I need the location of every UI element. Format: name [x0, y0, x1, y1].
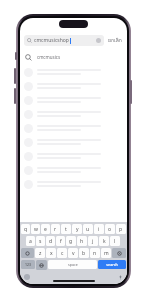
- button[interactable]: [20, 79, 127, 93]
- button[interactable]: f: [56, 236, 65, 246]
- button[interactable]: p: [116, 224, 126, 234]
- staticText: m: [104, 250, 109, 257]
- staticText: ยกเลิก: [108, 36, 122, 44]
- button[interactable]: Emoji: [36, 260, 47, 270]
- staticText: w: [34, 226, 38, 233]
- staticText: n: [93, 250, 97, 257]
- button[interactable]: y: [72, 224, 82, 234]
- button[interactable]: cmcmusicshop: [24, 35, 104, 46]
- button[interactable]: h: [77, 236, 87, 246]
- button[interactable]: w: [31, 224, 40, 234]
- button[interactable]: r: [51, 224, 60, 234]
- button[interactable]: t: [61, 224, 71, 234]
- other: Silent switch: [15, 52, 17, 60]
- button[interactable]: g: [66, 236, 76, 246]
- button[interactable]: [20, 121, 127, 135]
- button[interactable]: Clear text: [96, 38, 101, 43]
- staticText: t: [65, 226, 67, 233]
- button[interactable]: o: [105, 224, 115, 234]
- button[interactable]: i: [94, 224, 104, 234]
- staticText: c: [61, 250, 64, 257]
- button[interactable]: u: [83, 224, 93, 234]
- button[interactable]: n: [90, 248, 100, 258]
- button[interactable]: cmcmusics: [20, 51, 127, 63]
- button[interactable]: Shift: [21, 248, 34, 258]
- button[interactable]: space: [48, 260, 97, 269]
- button[interactable]: Backspace: [112, 248, 126, 258]
- staticText: j: [92, 238, 94, 245]
- staticText: z: [39, 250, 42, 257]
- button[interactable]: ยกเลิก: [107, 34, 123, 46]
- staticText: s: [39, 238, 42, 245]
- other: Volume down: [14, 88, 16, 104]
- staticText: u: [86, 226, 90, 233]
- button[interactable]: [20, 163, 127, 177]
- button[interactable]: Emoji: [24, 274, 30, 280]
- button[interactable]: Dictation: [117, 274, 123, 280]
- staticText: d: [49, 238, 53, 245]
- other: Power: [130, 80, 132, 104]
- staticText: cmcmusicshop: [34, 37, 69, 44]
- staticText: f: [60, 238, 62, 245]
- button[interactable]: c: [57, 248, 67, 258]
- button[interactable]: m: [101, 248, 111, 258]
- button[interactable]: k: [99, 236, 109, 246]
- staticText: 123: [25, 262, 32, 267]
- button[interactable]: a: [26, 236, 35, 246]
- button[interactable]: d: [46, 236, 55, 246]
- staticText: i: [98, 226, 100, 233]
- staticText: q: [24, 226, 28, 233]
- button[interactable]: [20, 135, 127, 149]
- staticText: a: [29, 238, 32, 245]
- button[interactable]: l: [110, 236, 120, 246]
- staticText: p: [119, 226, 123, 233]
- button[interactable]: [20, 65, 127, 79]
- staticText: o: [108, 226, 112, 233]
- button[interactable]: [20, 177, 127, 191]
- button[interactable]: j: [88, 236, 98, 246]
- staticText: v: [72, 250, 75, 257]
- staticText: y: [76, 226, 79, 233]
- staticText: space: [68, 262, 78, 267]
- button[interactable]: [20, 149, 127, 163]
- staticText: l: [114, 238, 116, 245]
- button[interactable]: z: [35, 248, 45, 258]
- staticText: k: [103, 238, 106, 245]
- staticText: cmcmusics: [37, 54, 61, 60]
- button[interactable]: [20, 107, 127, 121]
- button[interactable]: 123: [21, 260, 35, 269]
- staticText: search: [106, 262, 118, 267]
- staticText: h: [80, 238, 84, 245]
- staticText: e: [44, 226, 47, 233]
- button[interactable]: x: [46, 248, 56, 258]
- button[interactable]: s: [36, 236, 45, 246]
- button[interactable]: q: [21, 224, 30, 234]
- button[interactable]: b: [79, 248, 89, 258]
- button[interactable]: [20, 93, 127, 107]
- other: Volume up: [14, 68, 16, 84]
- staticText: b: [82, 250, 86, 257]
- button[interactable]: e: [41, 224, 50, 234]
- button[interactable]: search: [98, 260, 126, 269]
- staticText: x: [50, 250, 53, 257]
- button[interactable]: v: [68, 248, 78, 258]
- staticText: r: [54, 226, 57, 233]
- staticText: g: [69, 238, 73, 245]
